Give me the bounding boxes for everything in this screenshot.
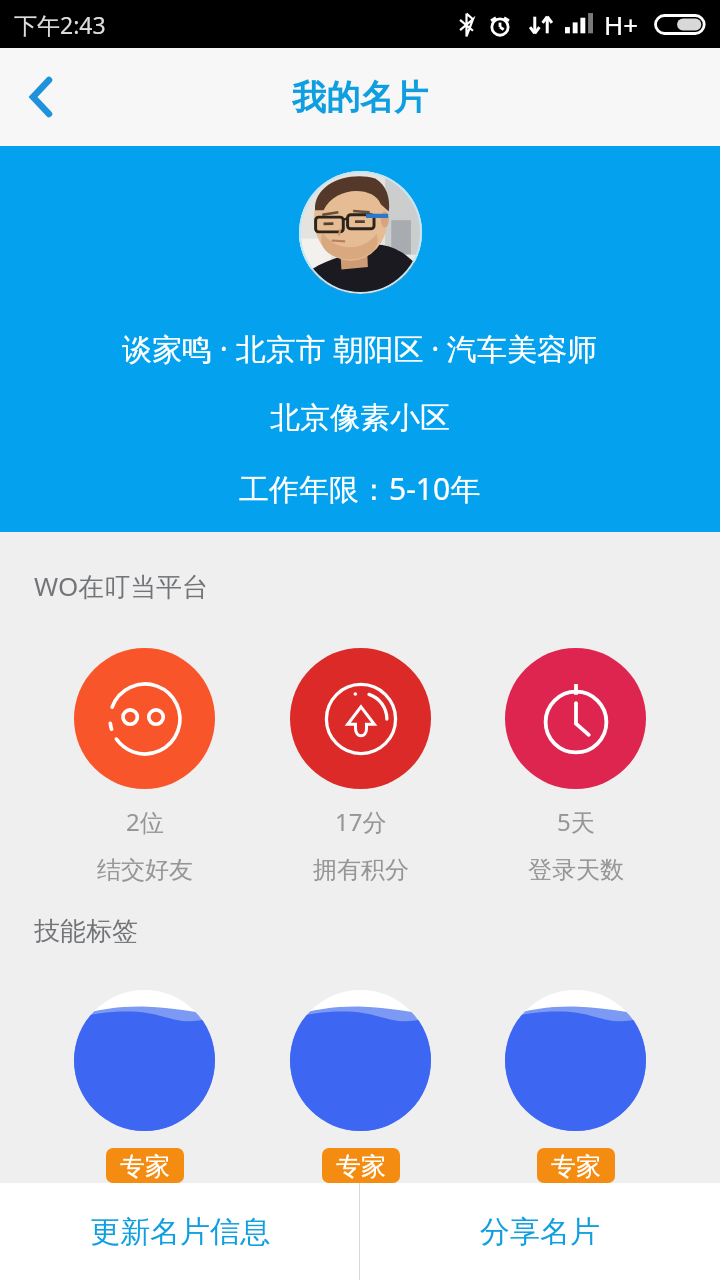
button[interactable]: 2位: [74, 648, 215, 885]
staticText: 登录天数: [528, 855, 624, 885]
staticText: 2位: [126, 805, 164, 838]
button[interactable]: 专家: [290, 990, 431, 1183]
staticText: 专家: [120, 1151, 170, 1180]
button[interactable]: 分享名片: [360, 1183, 720, 1280]
staticText: WO在叮当平台: [34, 568, 209, 604]
staticText: 北京像素小区: [270, 399, 450, 437]
button[interactable]: Back: [0, 52, 90, 142]
button[interactable]: Avatar: [299, 171, 422, 294]
staticText: 更新名片信息: [90, 1213, 270, 1251]
staticText: H+: [604, 7, 639, 42]
button[interactable]: 更新名片信息: [0, 1183, 359, 1280]
staticText: 专家: [551, 1151, 601, 1180]
staticText: 技能标签: [34, 915, 138, 948]
staticText: 下午2:43: [14, 9, 106, 40]
staticText: 工作年限：5-10年: [239, 468, 481, 509]
staticText: 我的名片: [292, 76, 428, 119]
staticText: 拥有积分: [313, 855, 409, 885]
button[interactable]: 专家: [74, 990, 215, 1183]
staticText: 5天: [557, 805, 595, 838]
staticText: 分享名片: [480, 1213, 600, 1251]
button[interactable]: 专家: [505, 990, 646, 1183]
staticText: 结交好友: [97, 855, 193, 885]
staticText: 17分: [335, 805, 387, 838]
button[interactable]: 17分: [290, 648, 431, 885]
staticText: 谈家鸣 · 北京市 朝阳区 · 汽车美容师: [122, 328, 598, 369]
staticText: 专家: [336, 1151, 386, 1180]
button[interactable]: 5天: [505, 648, 646, 885]
